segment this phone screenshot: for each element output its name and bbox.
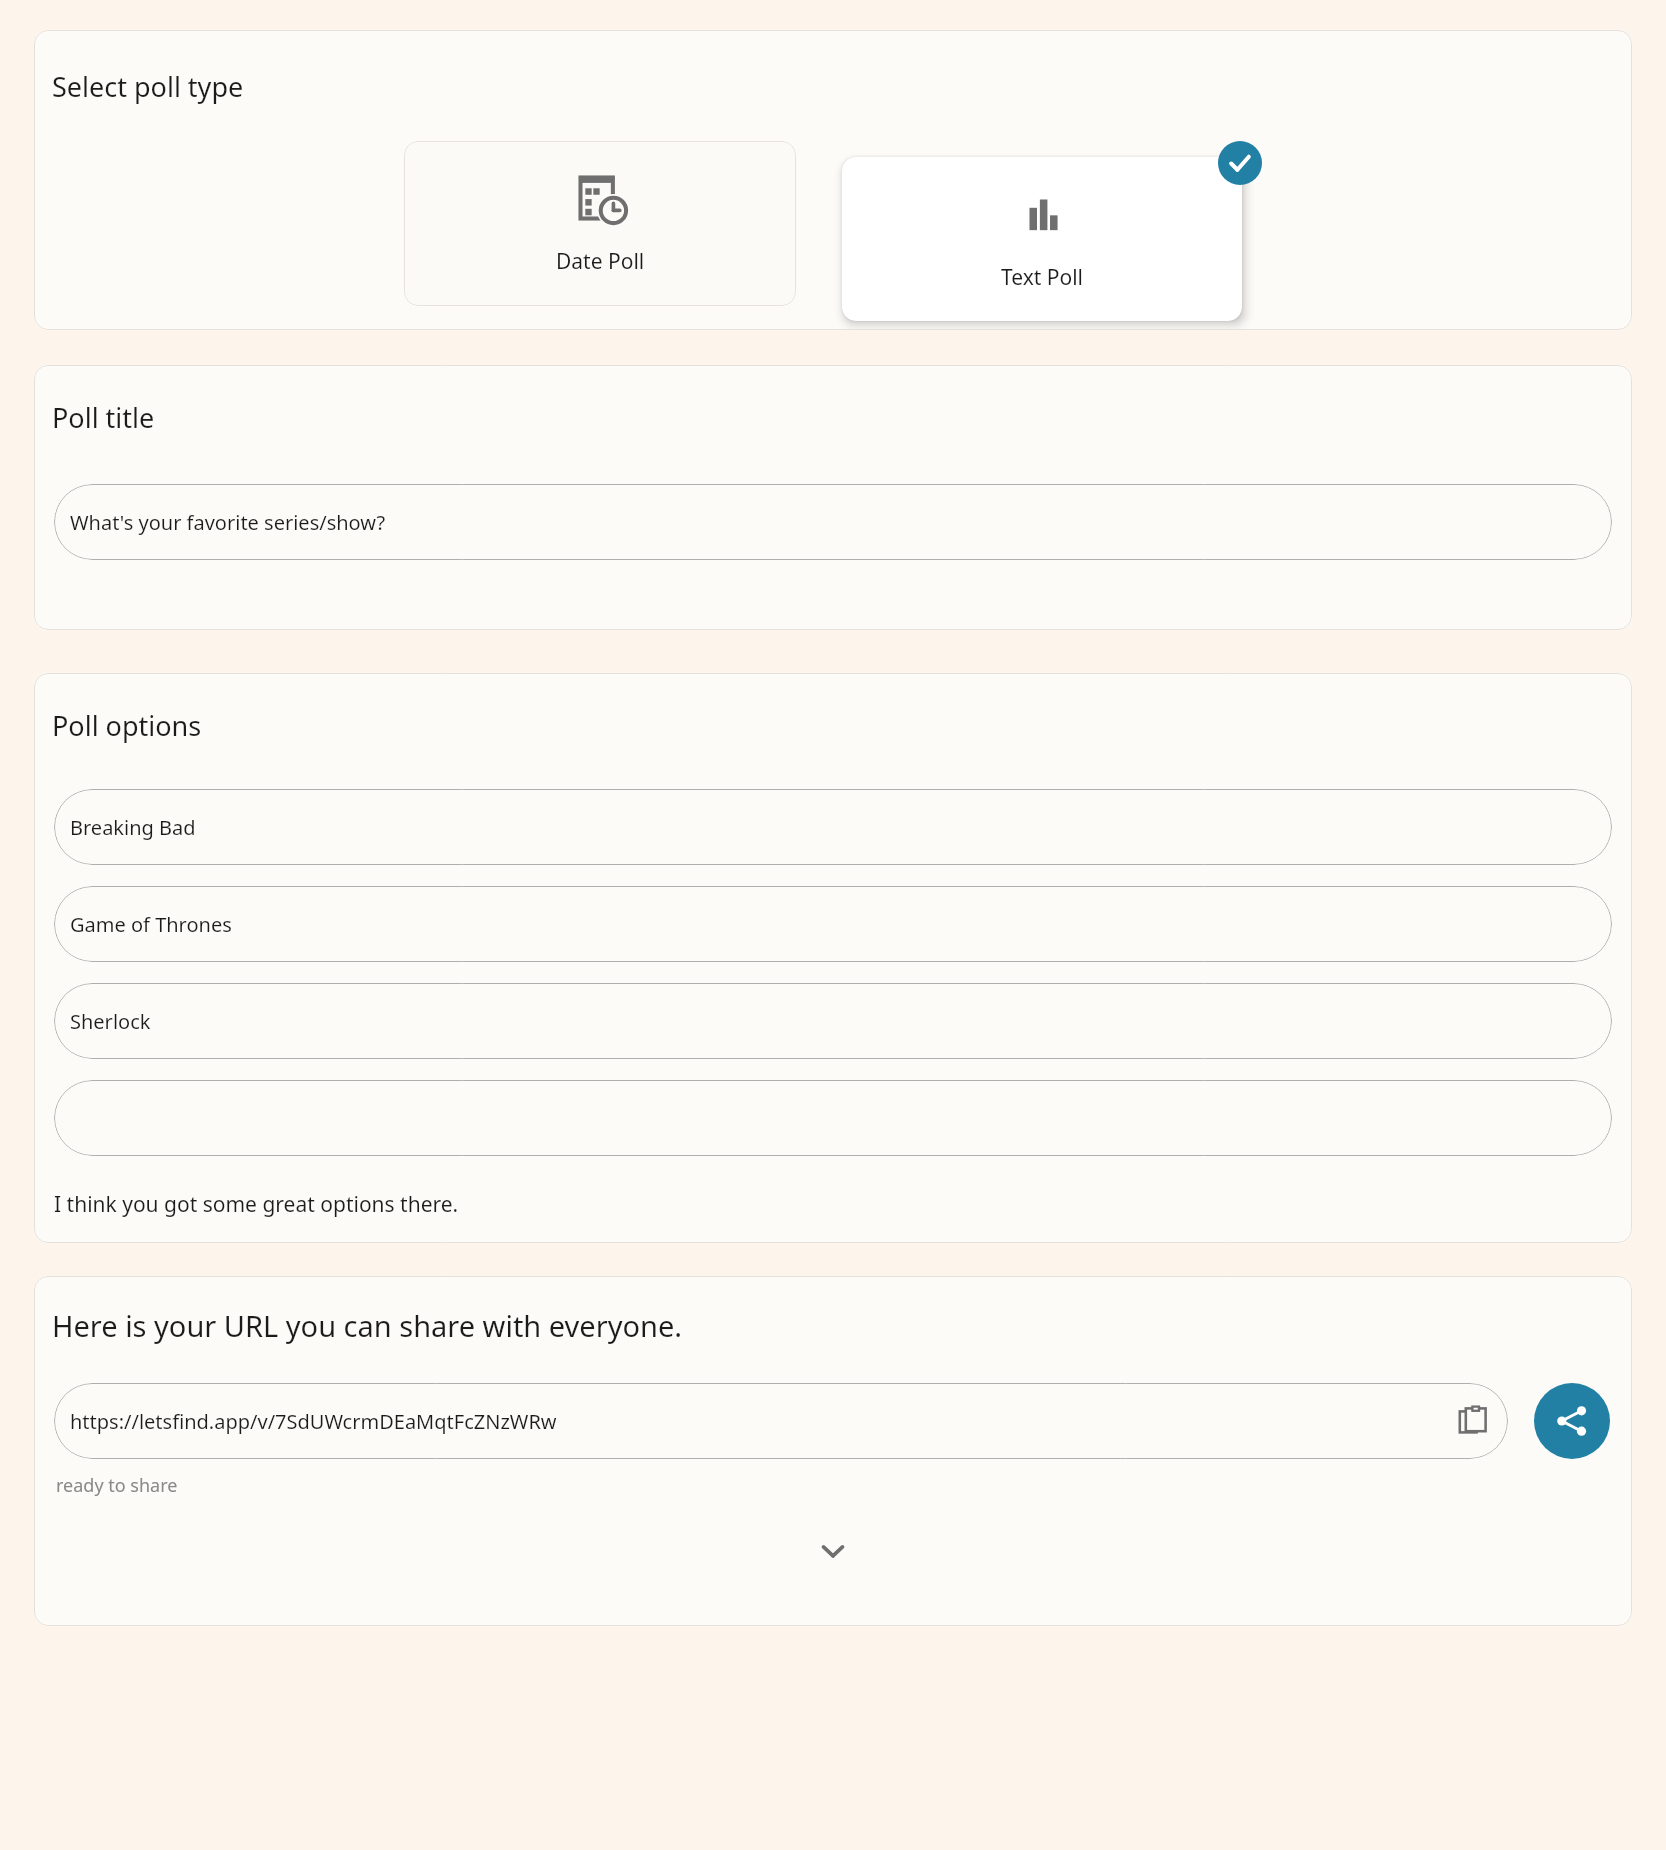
staticText: ready to share	[56, 1473, 178, 1498]
button[interactable]: Collapse	[34, 1528, 1632, 1574]
staticText: Text Poll	[1001, 263, 1084, 292]
staticText: I think you got some great options there…	[54, 1190, 459, 1219]
staticText: Date Poll	[556, 247, 645, 276]
button[interactable]: Text Poll	[842, 157, 1242, 321]
button[interactable]: What's your favorite series/show?	[54, 484, 1612, 560]
button[interactable]: Copy link	[1454, 1402, 1492, 1440]
staticText: Breaking Bad	[70, 814, 1600, 841]
other: Selected	[1218, 141, 1262, 185]
staticText: Sherlock	[70, 1008, 1600, 1035]
staticText: Here is your URL you can share with ever…	[52, 1306, 683, 1345]
button[interactable]: Breaking Bad	[54, 789, 1612, 865]
button[interactable]: Game of Thrones	[54, 886, 1612, 962]
button[interactable]: Sherlock	[54, 983, 1612, 1059]
button[interactable]: Date Poll	[404, 141, 796, 306]
staticText: Select poll type	[52, 68, 244, 105]
button[interactable]: Share	[1534, 1383, 1610, 1459]
staticText: Poll options	[52, 707, 202, 744]
button[interactable]	[54, 1080, 1612, 1156]
staticText: What's your favorite series/show?	[70, 509, 1600, 536]
button[interactable]: https://letsfind.app/v/7SdUWcrmDEaMqtFcZ…	[54, 1383, 1508, 1459]
staticText: Poll title	[52, 399, 155, 436]
staticText: Game of Thrones	[70, 911, 1600, 938]
staticText: https://letsfind.app/v/7SdUWcrmDEaMqtFcZ…	[70, 1408, 1454, 1435]
